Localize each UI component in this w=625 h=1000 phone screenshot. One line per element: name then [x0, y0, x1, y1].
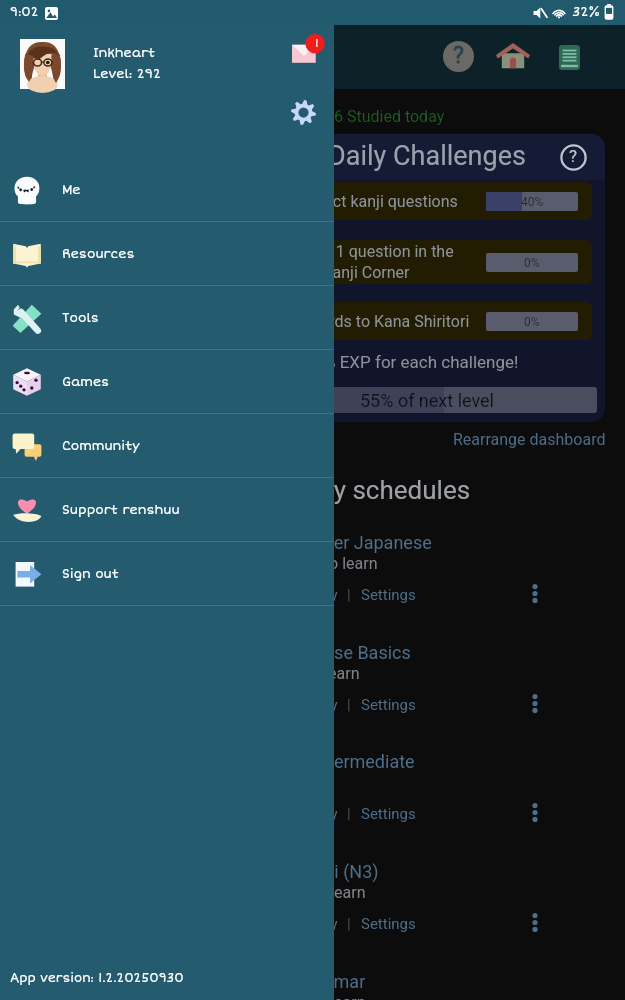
staticText: Study [300, 696, 338, 714]
staticText: Support renshuu [62, 502, 180, 517]
staticText: 32% [572, 4, 601, 20]
staticText: 9:02 [10, 5, 39, 20]
staticText: Grammar [290, 971, 366, 992]
staticText: to learn [324, 554, 378, 573]
staticText: Community [62, 438, 140, 453]
staticText: Add 5 words to Kana Shiritori [261, 312, 486, 331]
staticText: ? [453, 42, 464, 69]
staticText: | [347, 696, 351, 714]
button[interactable]: Kanji Intermediate [0, 751, 625, 855]
button[interactable]: Study lists [552, 39, 586, 73]
staticText: Settings [361, 805, 416, 823]
staticText: App version: 1.2.20250930 [10, 971, 184, 986]
staticText: 0% [524, 315, 540, 329]
button[interactable]: 55% of next level [256, 387, 597, 413]
staticText: Study [300, 586, 338, 604]
button[interactable]: Master Japanese [0, 532, 625, 636]
staticText: Tools [62, 310, 99, 325]
staticText: My schedules [311, 475, 471, 505]
staticText: Answer 1 question in the Kanji Corner [261, 242, 486, 282]
staticText: Study [300, 915, 338, 933]
staticText: Kanji Intermediate [269, 751, 415, 772]
button[interactable]: Me [0, 158, 334, 221]
staticText: 55% of next level [360, 390, 494, 411]
staticText: Get 100% EXP for each challenge! [264, 352, 519, 372]
button[interactable]: Community [0, 414, 334, 477]
staticText: to learn [312, 883, 366, 902]
staticText: 1 [315, 37, 319, 51]
staticText: 40% [521, 195, 544, 209]
button[interactable]: Add 5 words to Kana Shiritori [261, 302, 592, 340]
staticText: 46 Studied today [325, 107, 445, 126]
button[interactable]: Grammar [0, 971, 625, 1000]
button[interactable]: Answer 1 question in the Kanji Corner [261, 240, 592, 284]
staticText: Study [300, 805, 338, 823]
button[interactable]: Settings [291, 100, 316, 125]
staticText: Settings [361, 696, 416, 714]
staticText: | [347, 915, 351, 933]
button[interactable]: Help [441, 39, 475, 73]
button[interactable]: 30 correct kanji questions [261, 182, 592, 220]
staticText: Japanese Basics [275, 642, 411, 663]
staticText: Settings [361, 586, 416, 604]
button[interactable]: Home [496, 39, 530, 73]
staticText: Level: 292 [93, 66, 161, 81]
button[interactable]: Messages [292, 34, 328, 70]
staticText: Master Japanese [293, 532, 432, 553]
staticText: to learn [312, 993, 366, 1000]
button[interactable]: Sign out [0, 542, 334, 605]
button[interactable]: Daily challenges help [559, 143, 587, 171]
staticText: | [347, 586, 351, 604]
button[interactable]: More options [518, 905, 552, 939]
button[interactable]: More options [518, 795, 552, 829]
staticText: Settings [361, 915, 416, 933]
button[interactable]: Resources [0, 222, 334, 285]
button[interactable]: Games [0, 350, 334, 413]
staticText: to learn [306, 664, 360, 683]
button[interactable]: Kanji (N3) [0, 861, 625, 965]
button[interactable]: Japanese Basics [0, 642, 625, 746]
staticText: Rearrange dashboard [453, 430, 606, 449]
staticText: Kanji (N3) [299, 861, 379, 882]
button[interactable]: Tools [0, 286, 334, 349]
button[interactable]: More options [518, 686, 552, 720]
staticText: Resources [62, 246, 135, 261]
staticText: Games [62, 374, 110, 389]
staticText: Inkheart [93, 45, 156, 60]
staticText: | [347, 805, 351, 823]
button[interactable]: Support renshuu [0, 478, 334, 541]
staticText: Sign out [62, 566, 119, 581]
button[interactable]: More options [518, 576, 552, 610]
staticText: Me [62, 182, 81, 197]
staticText: 30 correct kanji questions [261, 192, 486, 211]
staticText: Daily Challenges [328, 140, 526, 172]
staticText: ? [569, 146, 578, 166]
staticText: 0% [524, 256, 540, 270]
